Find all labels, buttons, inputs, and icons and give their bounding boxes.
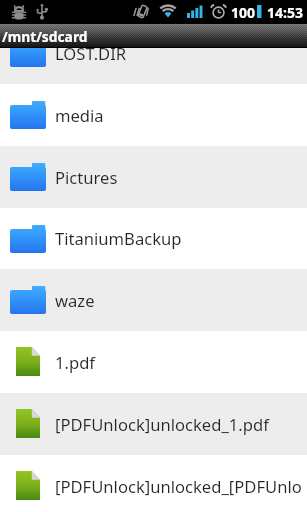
staticText: media xyxy=(55,104,104,127)
button[interactable]: media xyxy=(0,84,307,146)
button[interactable]: LOST.DIR xyxy=(0,22,307,84)
staticText: waze xyxy=(55,289,95,312)
staticText: 1.pdf xyxy=(55,351,96,374)
staticText: [PDFUnlock]unlocked_1.pdf xyxy=(55,413,269,436)
button[interactable]: [PDFUnlock]unlocked_1.pdf xyxy=(0,393,307,455)
staticText: [PDFUnlock]unlocked_[PDFUnlock]unlocked_… xyxy=(55,475,307,498)
button[interactable]: waze xyxy=(0,269,307,331)
staticText: 100 xyxy=(231,3,256,22)
button[interactable]: Pictures xyxy=(0,146,307,208)
staticText: TitaniumBackup xyxy=(55,227,182,250)
staticText: /mnt/sdcard xyxy=(2,27,88,46)
button[interactable]: 1.pdf xyxy=(0,331,307,393)
button[interactable]: [PDFUnlock]unlocked_[PDFUnlock]unlocked_… xyxy=(0,455,307,512)
staticText: 14:53 xyxy=(267,3,303,22)
button[interactable]: TitaniumBackup xyxy=(0,208,307,269)
staticText: LOST.DIR xyxy=(55,42,127,65)
staticText: Pictures xyxy=(55,166,118,189)
